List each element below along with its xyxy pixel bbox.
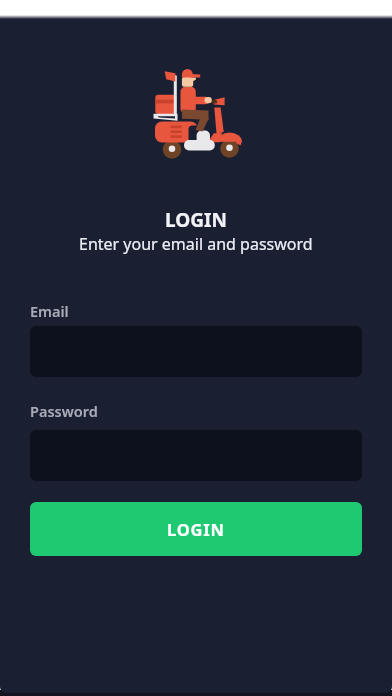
staticText: LOGIN [167,518,225,540]
staticText: Enter your email and password [79,233,313,255]
button[interactable]: LOGIN [30,502,362,556]
staticText: Email [30,301,69,321]
staticText: LOGIN [165,207,227,233]
staticText: Password [30,401,98,421]
